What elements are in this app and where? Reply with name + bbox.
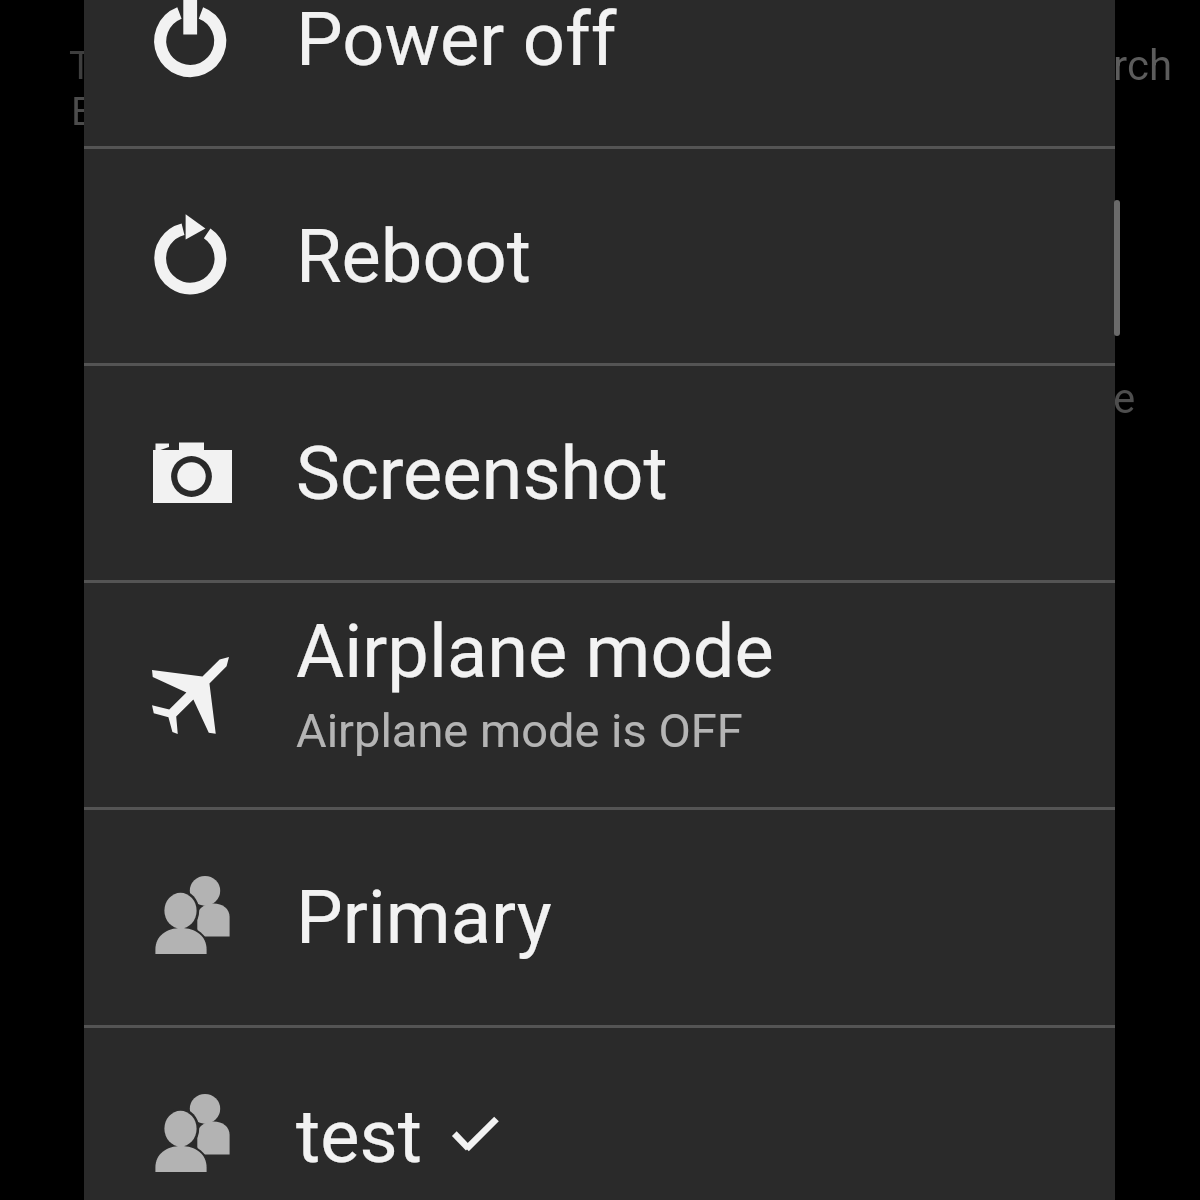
button[interactable]: Airplane mode (84, 583, 1115, 807)
staticText: Primary (296, 874, 552, 961)
button[interactable]: Power off (84, 0, 1115, 146)
staticText: Airplane mode (296, 608, 774, 695)
staticText: Power off (296, 0, 617, 83)
staticText: test (296, 1093, 422, 1180)
button[interactable]: Primary (84, 810, 1115, 1025)
staticText: Engine (71, 89, 189, 135)
staticText: Test (69, 43, 144, 89)
staticText: Screenshot (296, 430, 668, 517)
staticText: Reboot (296, 213, 532, 300)
button[interactable]: test (84, 1028, 1115, 1200)
other: Scroll position (1114, 200, 1120, 336)
staticText: e (1113, 374, 1136, 423)
button[interactable]: Screenshot (84, 366, 1115, 580)
button[interactable]: Reboot (84, 149, 1115, 363)
staticText: Search (1043, 41, 1173, 90)
staticText: Airplane mode is OFF (296, 703, 743, 758)
